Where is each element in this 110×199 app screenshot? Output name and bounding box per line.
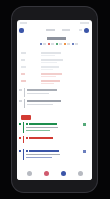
button[interactable] [17, 79, 92, 86]
button[interactable]: Profile [84, 28, 89, 33]
button[interactable] [17, 136, 92, 144]
button[interactable]: Chat [41, 168, 51, 178]
button[interactable] [17, 51, 92, 58]
button[interactable] [17, 149, 92, 161]
button[interactable]: Meet [58, 168, 68, 178]
button[interactable] [17, 58, 92, 65]
button[interactable] [17, 72, 92, 79]
button[interactable]: Menu [19, 28, 24, 33]
button[interactable] [17, 99, 92, 109]
button[interactable] [17, 65, 92, 72]
button[interactable]: Tasks [75, 168, 85, 178]
button[interactable] [17, 122, 92, 134]
button[interactable]: Inbox [24, 168, 34, 178]
button[interactable]: Overdue [21, 115, 31, 120]
button[interactable] [17, 88, 92, 98]
button[interactable] [40, 43, 78, 45]
